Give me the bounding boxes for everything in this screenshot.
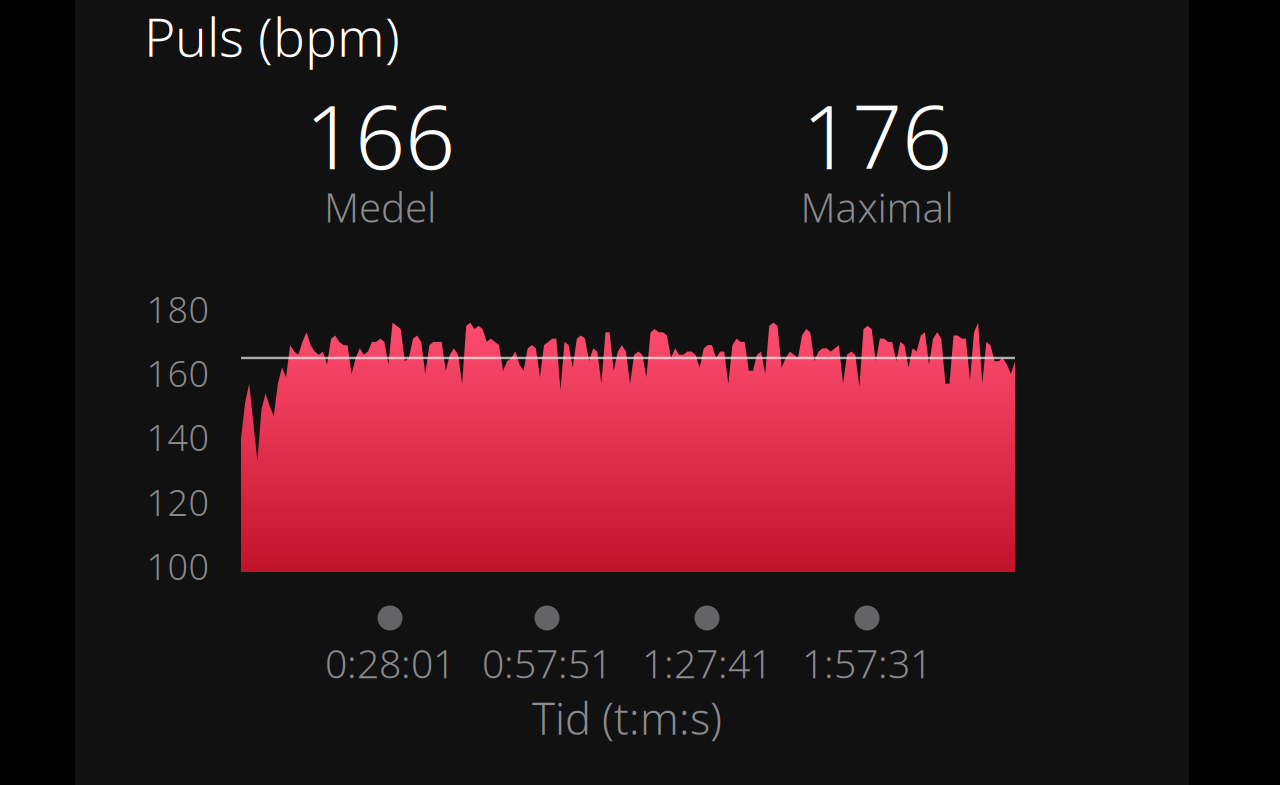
staticText: 166 (305, 75, 455, 195)
staticText: Puls (bpm) (144, 0, 400, 72)
staticText: 180 (146, 284, 209, 333)
staticText: 0:57:51 (482, 636, 612, 690)
staticText: 1:27:41 (642, 636, 772, 690)
group: 166 (0, 0, 1280, 785)
staticText: Medel (324, 180, 436, 234)
staticText: Tid (t:m:s) (532, 688, 722, 747)
staticText: 1:57:31 (802, 636, 932, 690)
group: 176 (0, 0, 1280, 785)
staticText: 100 (146, 541, 209, 590)
staticText: 120 (146, 477, 209, 526)
staticText: Maximal (800, 180, 953, 234)
staticText: 176 (802, 75, 952, 195)
staticText: 160 (146, 348, 209, 397)
staticText: 0:28:01 (325, 636, 455, 690)
staticText: 140 (146, 412, 209, 461)
